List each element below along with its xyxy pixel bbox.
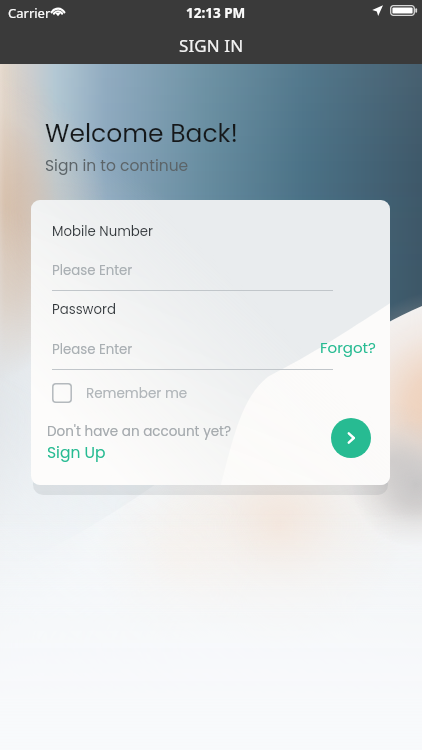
button[interactable]: Forgot? <box>320 337 376 358</box>
staticText: Sign in to continue <box>45 155 189 177</box>
staticText: 12:13 PM <box>186 4 246 22</box>
staticText: Don't have an account yet? <box>47 422 232 441</box>
button[interactable]: Remember me <box>52 383 188 403</box>
staticText: Carrier <box>8 4 51 22</box>
staticText: Welcome Back! <box>45 116 238 151</box>
staticText: Please Enter <box>52 340 133 359</box>
staticText: Mobile Number <box>52 222 154 241</box>
button[interactable]: Continue <box>331 418 371 458</box>
staticText: SIGN IN <box>179 34 244 57</box>
staticText: Please Enter <box>52 261 133 280</box>
staticText: Remember me <box>86 384 188 403</box>
button[interactable]: Sign Up <box>47 442 106 464</box>
staticText: Password <box>52 300 116 319</box>
